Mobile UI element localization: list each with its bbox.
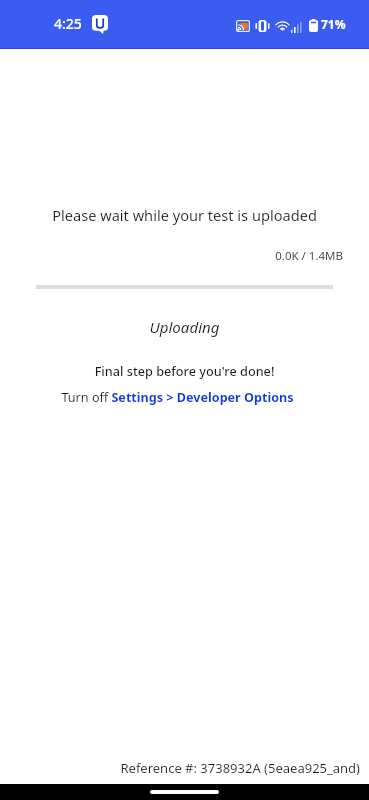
other: Vibrate mode: [255, 20, 270, 32]
other: Cellular signal: [291, 20, 302, 33]
other: Wi-Fi: [276, 19, 289, 31]
staticText: Reference #: 3738932A (5eaea925_and): [0, 759, 360, 777]
staticText: Please wait while your test is uploaded: [0, 205, 369, 225]
other: Battery 71 percent: [309, 19, 318, 32]
staticText: Final step before you're done!: [0, 362, 369, 379]
button[interactable]: Turn off Settings > Developer Options: [0, 389, 355, 406]
staticText: 4:25: [54, 14, 82, 33]
staticText: Uploading: [0, 317, 369, 338]
staticText: 0.0K / 1.4MB: [0, 248, 343, 264]
other: UserTesting: [92, 15, 108, 34]
other: Casting screen: [236, 20, 250, 32]
staticText: 71%: [321, 16, 346, 32]
